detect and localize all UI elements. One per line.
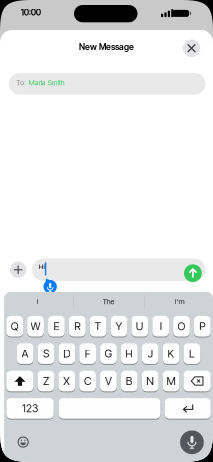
button[interactable]: E xyxy=(48,315,65,337)
button[interactable]: 123 xyxy=(6,398,54,419)
staticText: C xyxy=(84,374,91,388)
button[interactable]: V xyxy=(100,370,117,392)
button[interactable]: The xyxy=(2,292,61,304)
staticText: J xyxy=(148,347,153,360)
button[interactable]: S xyxy=(38,343,54,364)
button[interactable]: H xyxy=(121,343,138,364)
staticText: M xyxy=(166,374,175,388)
button[interactable]: K xyxy=(163,343,179,364)
button[interactable]: I xyxy=(2,292,61,304)
button[interactable]: O xyxy=(173,315,190,337)
button[interactable]: F xyxy=(79,343,96,364)
staticText: A xyxy=(22,347,29,360)
button[interactable]: W xyxy=(27,315,44,337)
button[interactable]: Send xyxy=(184,264,202,282)
button[interactable]: A xyxy=(17,343,33,364)
staticText: U xyxy=(136,320,144,333)
button[interactable]: Emoji xyxy=(2,292,13,303)
button[interactable]: Q xyxy=(6,315,23,337)
staticText: 10:00 xyxy=(21,7,41,18)
button[interactable]: J xyxy=(142,343,159,364)
staticText: V xyxy=(105,374,112,388)
button[interactable]: Add attachment xyxy=(10,262,26,278)
staticText: P xyxy=(199,320,205,333)
staticText: E xyxy=(53,320,59,333)
button[interactable]: Dictation xyxy=(42,278,57,292)
button[interactable]: Z xyxy=(37,370,54,392)
button[interactable]: Delete xyxy=(183,370,211,392)
staticText: T xyxy=(95,320,102,333)
button[interactable]: B xyxy=(121,370,138,392)
staticText: Y xyxy=(115,320,122,333)
button[interactable]: To: xyxy=(9,73,205,95)
button[interactable]: T xyxy=(90,315,106,337)
staticText: I xyxy=(36,297,38,306)
button[interactable]: Shift xyxy=(6,370,33,392)
button[interactable]: U xyxy=(131,315,148,337)
staticText: 123 xyxy=(22,402,38,415)
staticText: B xyxy=(126,374,133,388)
staticText: O xyxy=(177,320,185,333)
staticText: R xyxy=(74,320,80,333)
staticText: X xyxy=(63,374,70,388)
button[interactable]: P xyxy=(194,315,211,337)
staticText: I’m xyxy=(175,297,185,306)
button[interactable]: C xyxy=(79,370,96,392)
button[interactable]: Close xyxy=(183,39,200,57)
button[interactable]: R xyxy=(69,315,86,337)
staticText: K xyxy=(167,347,174,360)
button[interactable]: G xyxy=(100,343,117,364)
button[interactable]: Return xyxy=(165,398,211,419)
button[interactable]: I xyxy=(152,315,169,337)
staticText: G xyxy=(104,347,112,360)
staticText: Z xyxy=(43,374,49,388)
staticText: To: xyxy=(16,78,26,87)
button[interactable]: Space xyxy=(59,398,160,419)
staticText: New Message xyxy=(79,42,134,52)
staticText: D xyxy=(63,347,70,360)
staticText: W xyxy=(30,320,40,333)
staticText: F xyxy=(85,347,91,360)
staticText: Q xyxy=(11,320,19,333)
button[interactable]: X xyxy=(58,370,75,392)
staticText: L xyxy=(189,347,195,360)
staticText: The xyxy=(102,297,114,306)
button[interactable]: Y xyxy=(111,315,127,337)
button[interactable]: Dictation xyxy=(180,430,204,454)
button[interactable]: D xyxy=(58,343,75,364)
staticText: H xyxy=(125,347,133,360)
staticText: S xyxy=(43,347,49,360)
staticText: Hi xyxy=(39,262,45,271)
button[interactable]: N xyxy=(142,370,158,392)
button[interactable]: I’m xyxy=(2,292,61,304)
button[interactable]: M xyxy=(163,370,179,392)
button[interactable]: L xyxy=(184,343,200,364)
staticText: N xyxy=(146,374,154,388)
staticText: Maria Smith xyxy=(29,78,65,87)
staticText: I xyxy=(160,320,162,333)
